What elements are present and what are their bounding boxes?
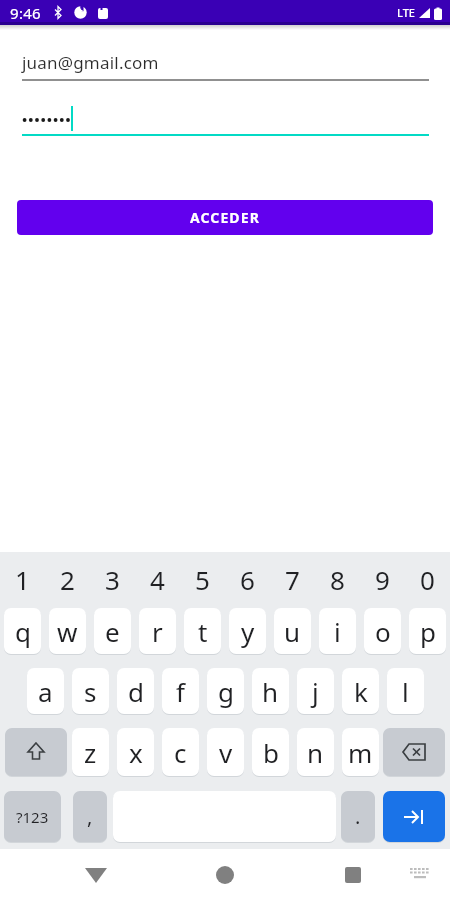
staticText: b [263,735,279,770]
button[interactable] [402,855,438,895]
button[interactable]: x [117,728,154,776]
staticText: g [218,674,234,709]
button[interactable]: juan@gmail.com [22,51,428,78]
button[interactable]: 1 [0,560,45,598]
staticText: u [284,614,301,649]
button[interactable] [22,104,428,132]
staticText: ?123 [16,807,49,827]
staticText: 4 [150,562,165,597]
button[interactable] [72,851,120,899]
staticText: x [129,735,143,770]
button[interactable]: f [162,668,199,714]
button[interactable]: g [207,668,244,714]
button[interactable]: k [342,668,379,714]
button[interactable]: ?123 [4,791,61,842]
button[interactable]: z [72,728,109,776]
staticText: 2 [60,562,75,597]
button[interactable] [383,728,445,776]
staticText: v [219,735,233,770]
staticText: h [262,674,279,709]
staticText: p [420,614,436,649]
staticText: , [87,803,93,830]
staticText: q [15,614,31,649]
staticText: z [84,735,97,770]
staticText: 7 [285,562,300,597]
button[interactable]: v [207,728,244,776]
button[interactable]: t [184,608,221,654]
button[interactable]: 9 [360,560,405,598]
button[interactable]: s [72,668,109,714]
button[interactable]: o [364,608,401,654]
staticText: 9 [375,562,390,597]
staticText: l [402,674,409,709]
button[interactable]: c [162,728,199,776]
button[interactable]: . [341,791,375,842]
button[interactable]: 8 [315,560,360,598]
button[interactable]: 7 [270,560,315,598]
staticText: j [312,674,319,709]
staticText: y [241,614,255,649]
staticText: 0 [420,562,435,597]
staticText: t [198,614,208,649]
button[interactable]: m [342,728,379,776]
button[interactable]: q [4,608,41,654]
button[interactable] [383,791,445,842]
staticText: a [38,674,53,709]
staticText: f [176,674,185,709]
staticText: 5 [195,562,210,597]
button[interactable]: 2 [45,560,90,598]
button[interactable]: l [387,668,424,714]
staticText: s [84,674,97,709]
staticText: 8 [330,562,345,597]
button[interactable]: 5 [180,560,225,598]
button[interactable]: y [229,608,266,654]
button[interactable]: d [117,668,154,714]
button[interactable]: i [319,608,356,654]
button[interactable]: w [49,608,86,654]
button[interactable]: b [252,728,289,776]
staticText: r [152,614,163,649]
staticText: k [354,674,368,709]
staticText: 3 [105,562,120,597]
staticText: n [307,735,324,770]
button[interactable]: n [297,728,334,776]
staticText: 1 [15,562,30,597]
button[interactable]: , [73,791,107,842]
button[interactable]: 4 [135,560,180,598]
staticText: . [355,803,361,830]
button[interactable]: e [94,608,131,654]
staticText: m [348,735,373,770]
staticText: i [334,614,341,649]
staticText: 9:46 [10,3,41,23]
button[interactable]: ACCEDER [17,200,433,235]
staticText: juan@gmail.com [22,51,159,74]
button[interactable]: 6 [225,560,270,598]
button[interactable]: 3 [90,560,135,598]
staticText: 6 [240,562,255,597]
button[interactable] [5,728,67,776]
button[interactable]: a [27,668,64,714]
button[interactable]: 0 [405,560,450,598]
staticText: ACCEDER [190,208,260,227]
staticText: w [57,614,78,649]
staticText: d [128,674,144,709]
button[interactable] [201,851,249,899]
button[interactable]: r [139,608,176,654]
staticText: e [105,614,120,649]
staticText: LTE [397,5,415,20]
button[interactable]: j [297,668,334,714]
button[interactable]: u [274,608,311,654]
button[interactable] [329,851,377,899]
button[interactable]: h [252,668,289,714]
staticText: c [174,735,187,770]
staticText: o [375,614,391,649]
button[interactable]: p [409,608,446,654]
